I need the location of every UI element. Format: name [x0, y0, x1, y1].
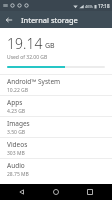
- staticText: 28.75 MB: [7, 171, 29, 178]
- button[interactable]: Back: [10, 184, 34, 200]
- button[interactable]: Navigate up: [0, 11, 17, 28]
- button[interactable]: Videos: [0, 137, 112, 158]
- button[interactable]: Recent apps: [78, 184, 102, 200]
- staticText: 17:18: [98, 3, 110, 9]
- staticText: Audio: [7, 161, 25, 170]
- button[interactable]: Home: [44, 184, 68, 200]
- staticText: Internal storage: [21, 15, 78, 25]
- staticText: Apps: [7, 98, 23, 107]
- staticText: 19.14: [7, 34, 43, 53]
- staticText: 4.23 GB: [7, 108, 26, 115]
- staticText: 303 MB: [7, 150, 25, 157]
- button[interactable]: Images: [0, 116, 112, 137]
- staticText: GB: [45, 41, 55, 51]
- staticText: 10.22 GB: [7, 87, 28, 94]
- staticText: Videos: [7, 140, 28, 149]
- button[interactable]: Audio: [0, 158, 112, 179]
- staticText: 3.50 GB: [7, 129, 26, 136]
- staticText: Android™ System: [7, 77, 61, 86]
- button[interactable]: Android™ System: [0, 74, 112, 95]
- staticText: 46%: [85, 4, 93, 9]
- button[interactable]: Apps: [0, 95, 112, 116]
- staticText: Images: [7, 119, 30, 128]
- staticText: Used of 32.00 GB: [7, 54, 48, 61]
